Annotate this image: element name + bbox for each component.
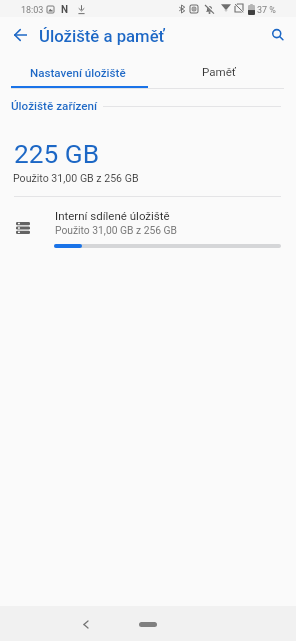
staticText: Interní sdílené úložiště	[55, 209, 170, 222]
button[interactable]: Zpět	[6, 21, 34, 49]
staticText: Použito 31,00 GB z 256 GB	[13, 172, 139, 184]
button[interactable]: Domů	[139, 622, 157, 627]
staticText: Použito 31,00 GB z 256 GB	[55, 224, 178, 236]
button[interactable]: Paměť	[145, 56, 293, 87]
staticText: Úložiště a paměť	[39, 27, 165, 47]
button[interactable]: Zpět	[74, 612, 98, 636]
button[interactable]: Interní sdílené úložiště	[0, 198, 296, 254]
staticText: Nastavení úložiště	[30, 66, 126, 80]
staticText: 37 %	[257, 5, 276, 16]
button[interactable]: Nastavení úložiště	[4, 57, 152, 88]
staticText: 225 GB	[14, 139, 100, 170]
staticText: 18:03	[21, 5, 44, 16]
button[interactable]: Hledat	[264, 21, 292, 49]
staticText: N	[61, 4, 69, 16]
staticText: Paměť	[202, 65, 236, 79]
staticText: Úložiště zařízení	[11, 99, 98, 113]
